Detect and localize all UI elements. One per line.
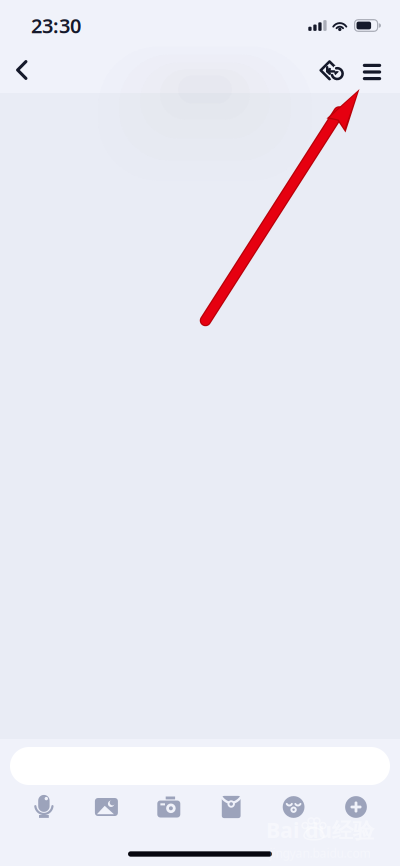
- button[interactable]: Red packet: [209, 792, 253, 822]
- staticText: 23:30: [31, 12, 81, 39]
- button[interactable]: More options: [353, 47, 391, 93]
- button[interactable]: Message input field: [0, 747, 400, 785]
- button[interactable]: Transfer: [313, 47, 353, 93]
- staticText: jingyan.baidu.com: [269, 845, 370, 861]
- staticText: Bai du经验: [266, 816, 374, 844]
- button[interactable]: Camera: [147, 792, 191, 822]
- button[interactable]: More: [334, 792, 378, 822]
- button[interactable]: Stickers: [272, 792, 316, 822]
- button[interactable]: Photos: [84, 792, 128, 822]
- button[interactable]: Back: [0, 47, 44, 93]
- button[interactable]: Voice message: [22, 792, 66, 822]
